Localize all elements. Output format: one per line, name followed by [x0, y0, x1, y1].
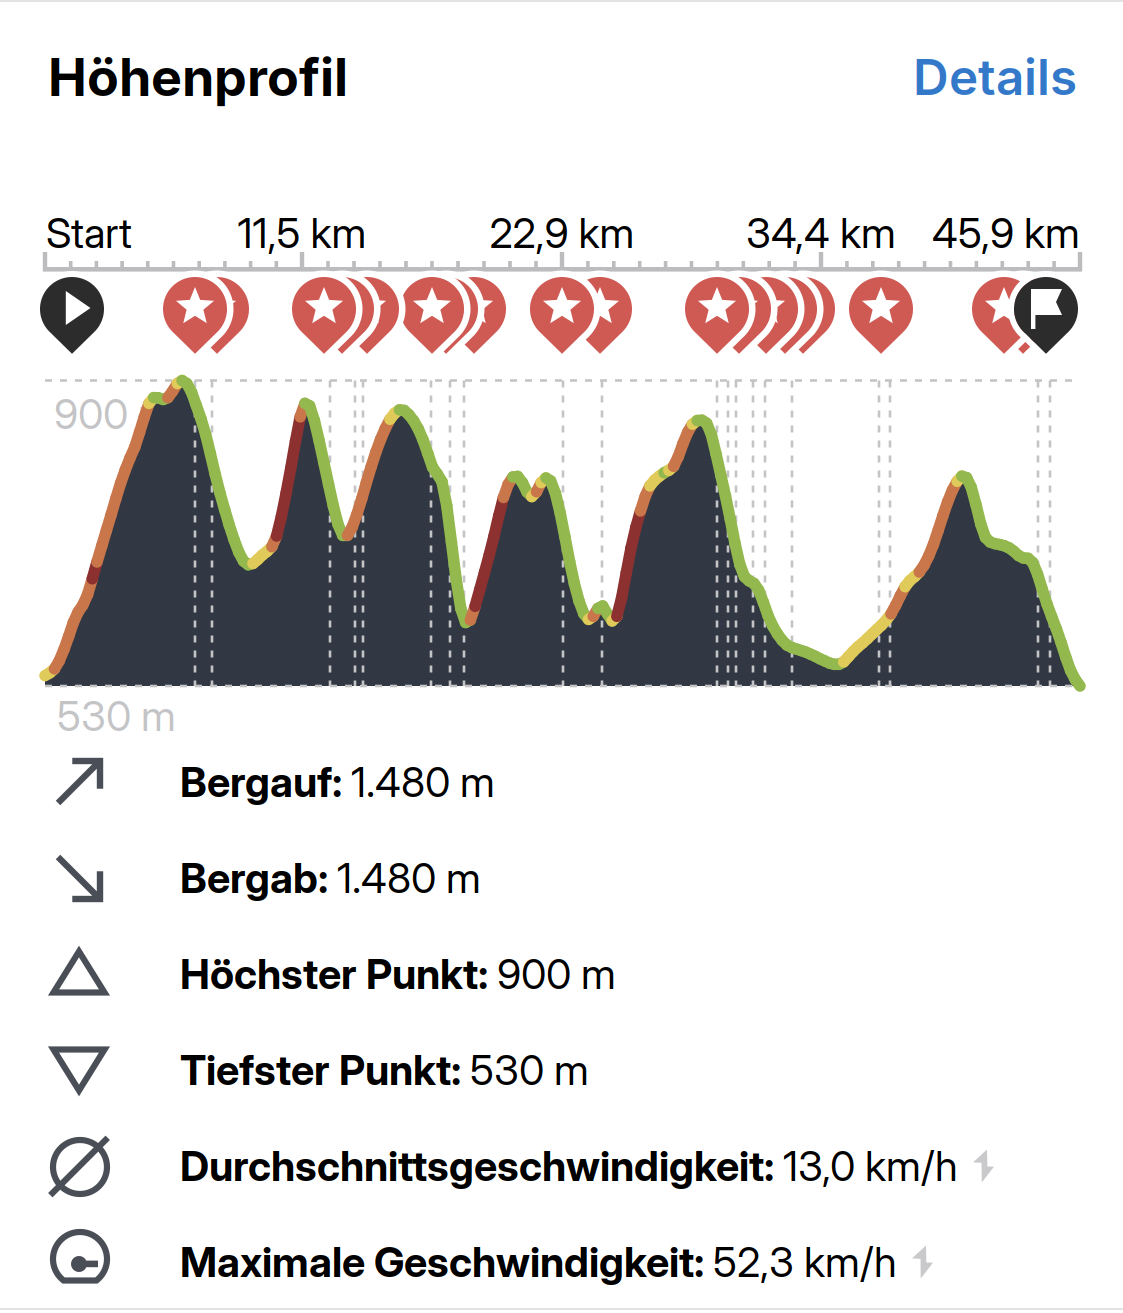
staticText: 34,4 km: [746, 208, 896, 258]
staticText: Durchschnittsgeschwindigkeit:: [180, 1141, 783, 1191]
staticText: 530 m: [470, 1045, 589, 1095]
staticText: Tiefster Punkt:: [180, 1045, 470, 1095]
staticText: 530 m: [57, 691, 176, 741]
staticText: 13,0 km/h: [783, 1141, 958, 1191]
staticText: Maximale Geschwindigkeit:: [180, 1237, 713, 1287]
staticText: 900 m: [497, 949, 616, 999]
staticText: Höchster Punkt:: [180, 949, 497, 999]
button[interactable]: Details: [827, 44, 1077, 110]
staticText: 1.480 m: [351, 757, 495, 807]
staticText: 52,3 km/h: [713, 1237, 897, 1287]
staticText: 1.480 m: [337, 853, 481, 903]
staticText: Details: [913, 47, 1077, 107]
staticText: 11,5 km: [237, 208, 366, 258]
staticText: 45,9 km: [932, 208, 1080, 258]
staticText: 900 m: [54, 389, 173, 439]
staticText: Höhenprofil: [48, 45, 348, 108]
staticText: Bergauf:: [180, 757, 351, 807]
staticText: 22,9 km: [489, 208, 634, 258]
button[interactable]: Höhenprofil: [48, 44, 548, 110]
staticText: Bergab:: [180, 853, 337, 903]
staticText: Start: [46, 208, 132, 258]
